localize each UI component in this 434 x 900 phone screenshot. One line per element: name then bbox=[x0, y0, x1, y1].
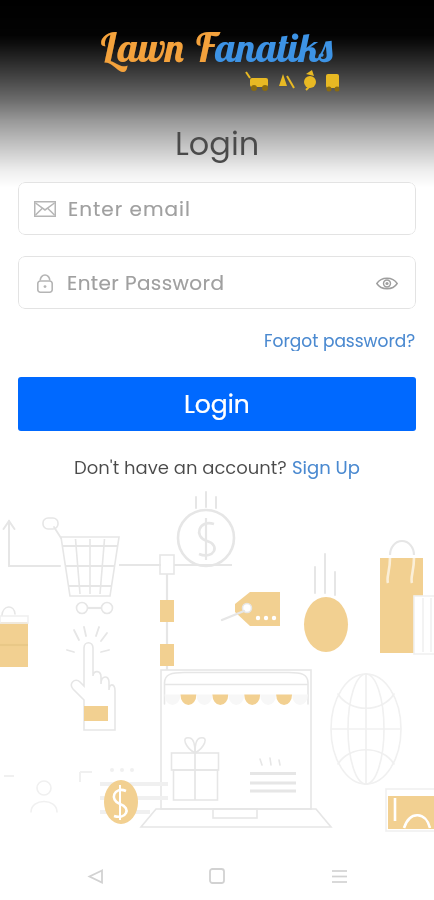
button[interactable]: Recent apps bbox=[312, 852, 366, 900]
staticText: Enter email bbox=[68, 195, 191, 223]
button[interactable]: Forgot password? bbox=[264, 329, 416, 351]
button[interactable]: Back bbox=[68, 852, 122, 900]
button[interactable]: Home bbox=[190, 852, 244, 900]
staticText: Sign Up bbox=[292, 455, 360, 480]
staticText: Enter Password bbox=[67, 269, 225, 297]
staticText: Login bbox=[175, 121, 260, 166]
button[interactable]: Enter Password bbox=[18, 256, 416, 309]
staticText: Login bbox=[184, 387, 250, 422]
button[interactable]: Login bbox=[18, 377, 416, 431]
button[interactable]: Don't have an account? bbox=[74, 455, 360, 480]
button[interactable]: Show password bbox=[374, 270, 400, 296]
staticText: Don't have an account? bbox=[74, 455, 292, 480]
staticText: Lawn Fanatiks bbox=[99, 22, 335, 72]
button[interactable]: Enter email bbox=[18, 182, 416, 235]
